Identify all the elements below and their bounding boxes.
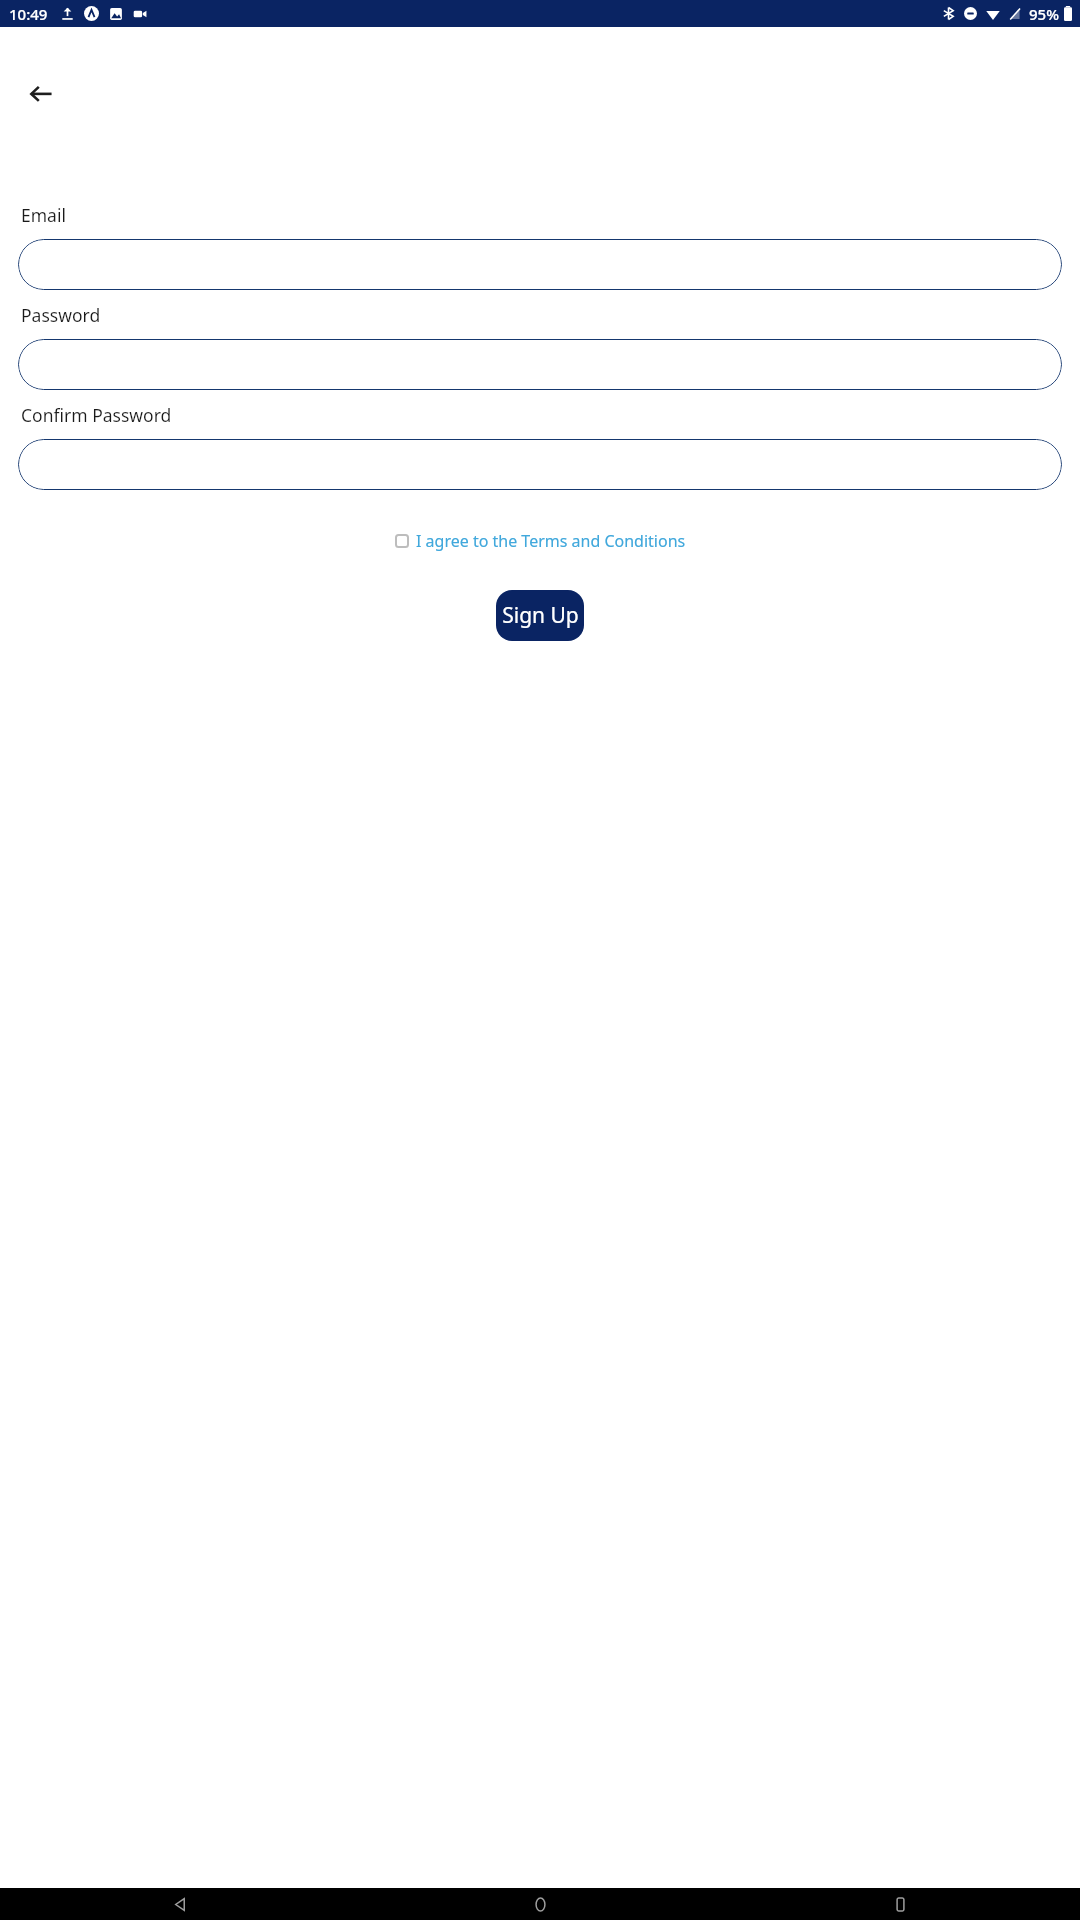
staticText: Sign Up (502, 601, 579, 630)
button[interactable]: Email input (18, 239, 1062, 290)
staticText: Password (21, 303, 101, 327)
button[interactable]: Confirm password input (18, 439, 1062, 490)
button[interactable]: Back (0, 1888, 360, 1920)
staticText: 10:49 (9, 4, 48, 24)
button[interactable]: Password input (18, 339, 1062, 390)
button[interactable]: Sign Up (496, 590, 584, 641)
button[interactable]: I agree to the Terms and Conditions (393, 525, 688, 557)
button[interactable]: Back (11, 63, 71, 123)
staticText: Email (21, 203, 66, 227)
staticText: 95% (1029, 4, 1059, 24)
button[interactable]: Home (360, 1888, 720, 1920)
button[interactable]: Recent apps (720, 1888, 1080, 1920)
staticText: Confirm Password (21, 403, 172, 427)
staticText: I agree to the Terms and Conditions (416, 530, 686, 552)
